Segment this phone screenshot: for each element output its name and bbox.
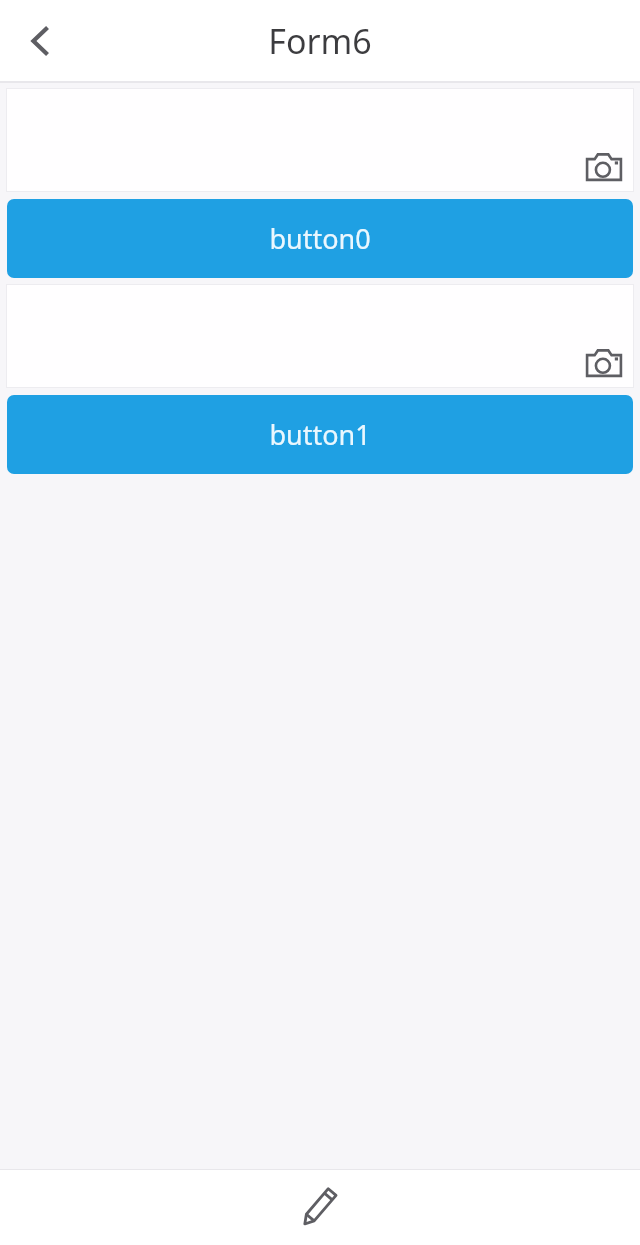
button[interactable]: Edit <box>284 1172 356 1244</box>
staticText: button1 <box>269 416 371 453</box>
staticText: button0 <box>269 220 371 257</box>
button[interactable]: Pick photo <box>6 284 634 388</box>
button[interactable]: Back <box>8 9 72 73</box>
button[interactable]: button0 <box>7 199 633 278</box>
staticText: Form6 <box>268 18 372 64</box>
button[interactable]: Pick photo <box>6 88 634 192</box>
button[interactable]: button1 <box>7 395 633 474</box>
